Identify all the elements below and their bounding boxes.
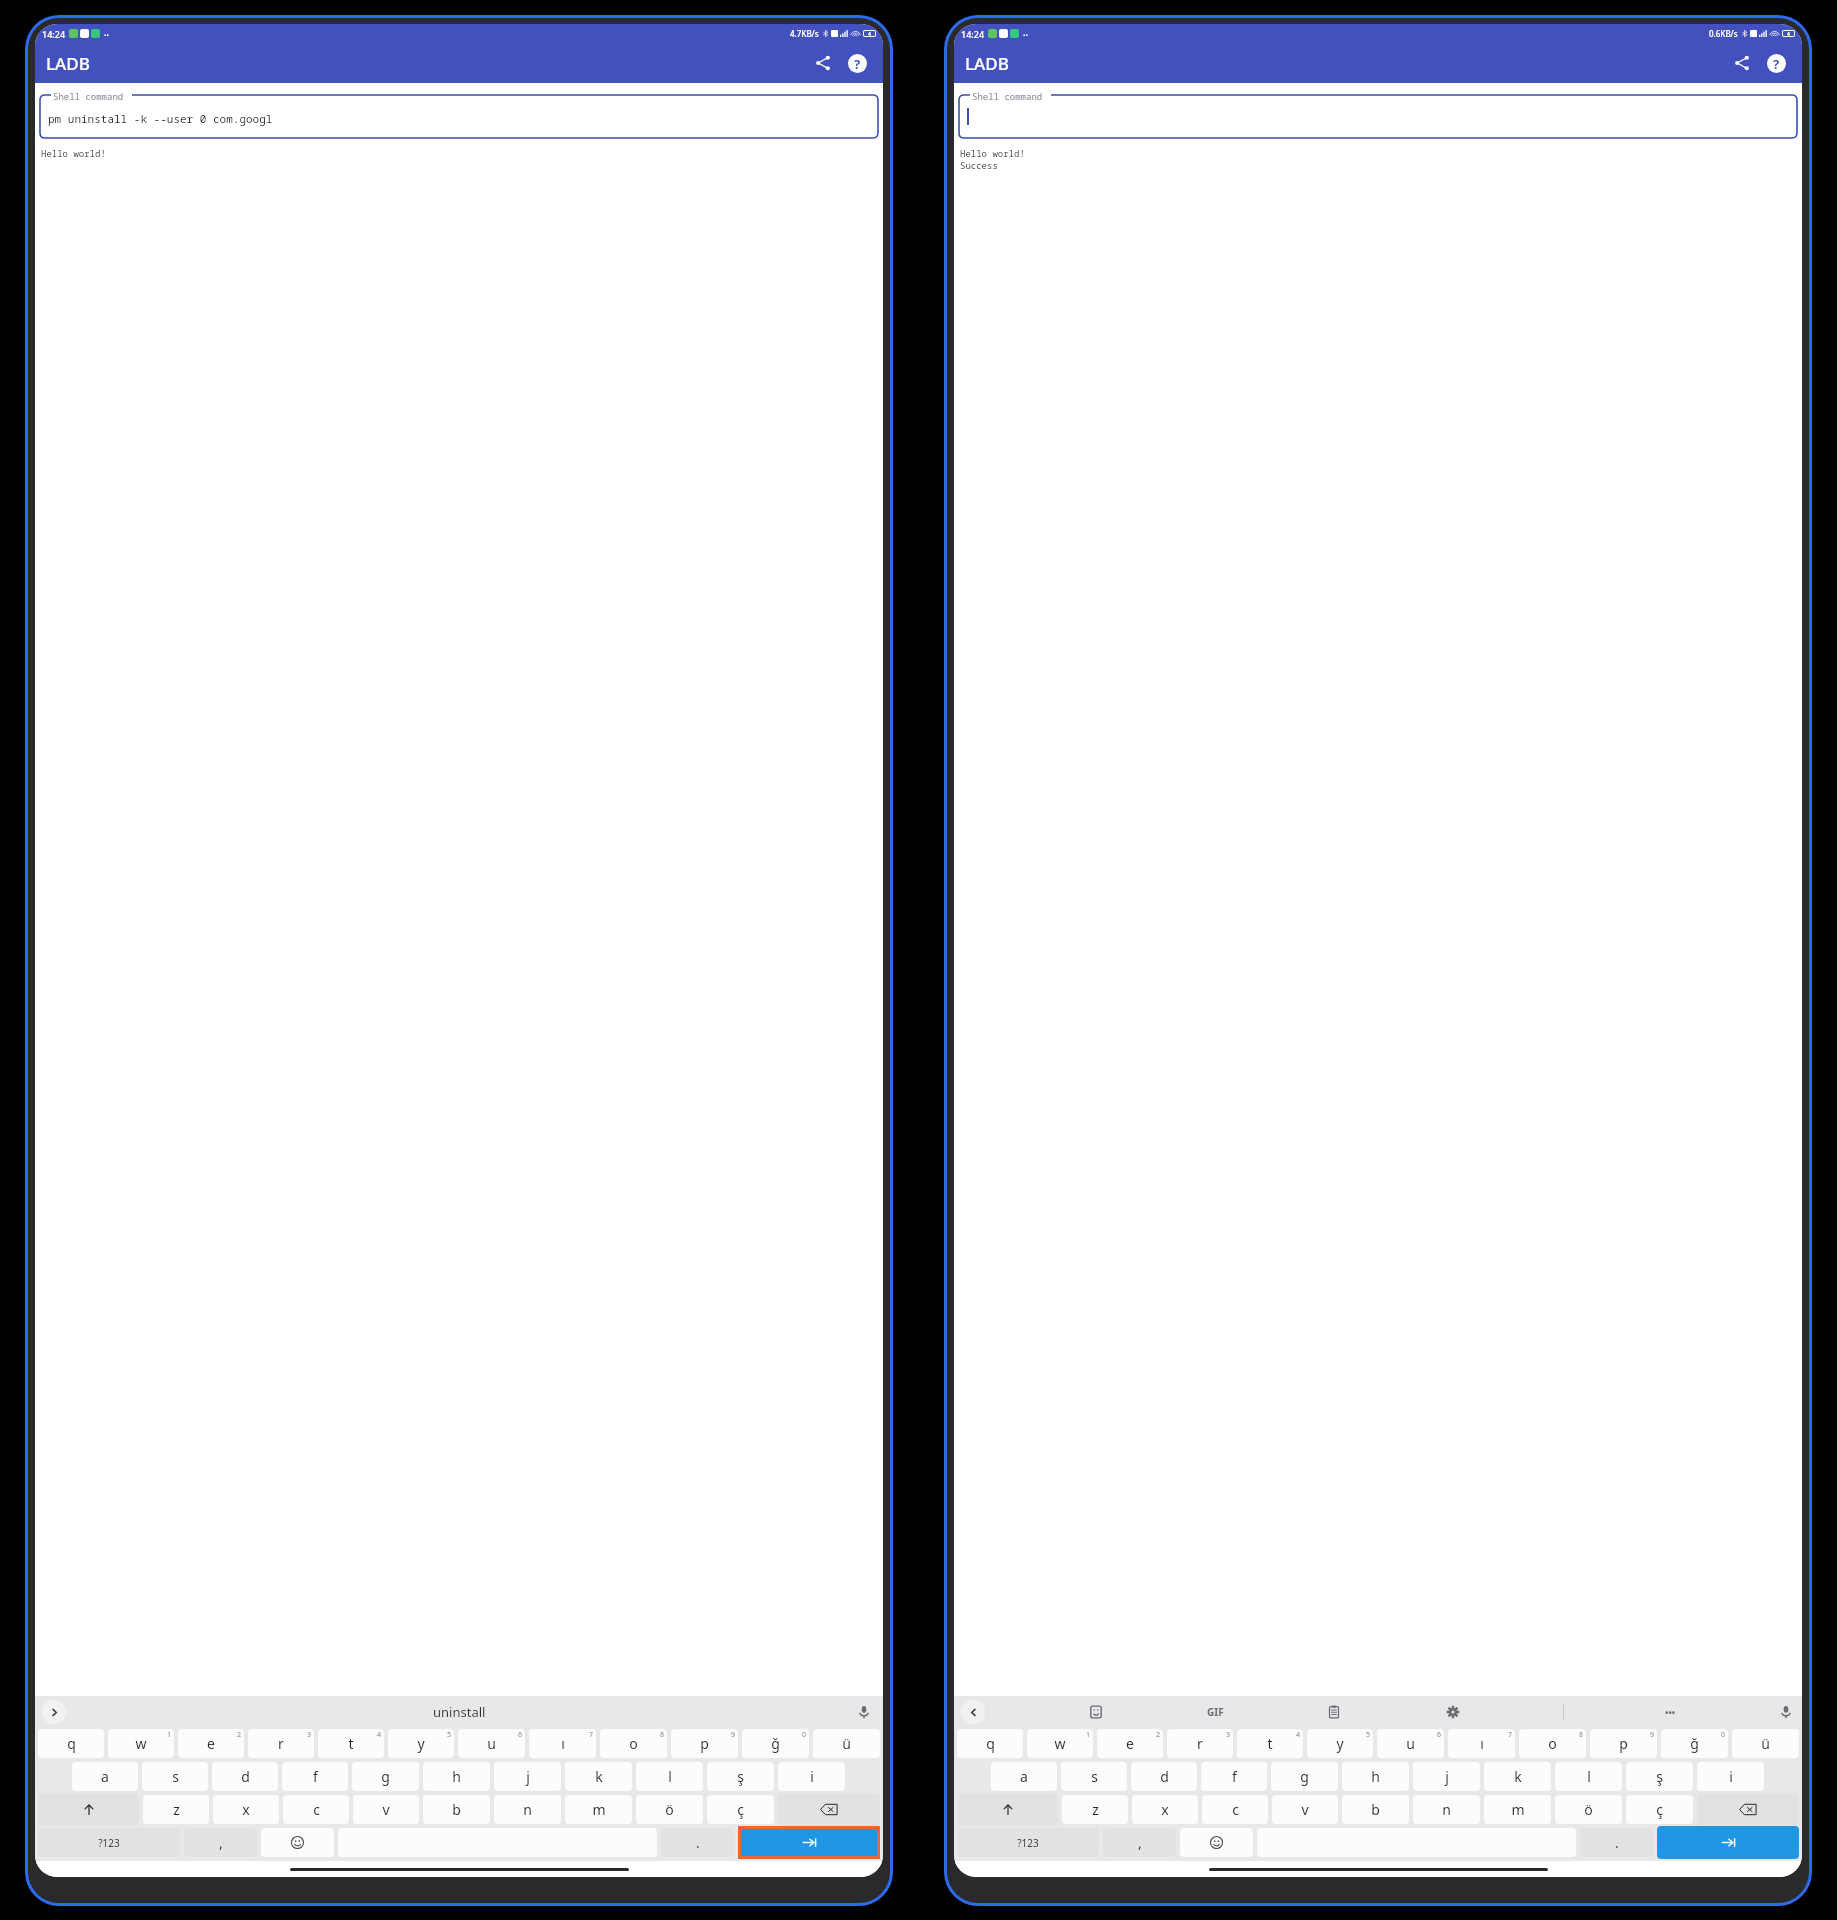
button[interactable] [261,1828,334,1857]
button[interactable]: s [142,1762,208,1791]
button[interactable]: u [1377,1729,1444,1758]
button[interactable]: Backspace [778,1793,880,1826]
button[interactable]: d [1131,1762,1197,1791]
staticText: 3 [1226,1730,1231,1740]
staticText: w [1054,1734,1066,1753]
button[interactable]: k [1484,1762,1551,1791]
button[interactable]: pm uninstall -k --user 0 com.googl [48,99,878,138]
button[interactable]: Share [1727,48,1757,78]
button[interactable]: ü [1732,1729,1799,1758]
button[interactable]: n [1413,1795,1480,1824]
button[interactable]: z [143,1795,209,1824]
button[interactable]: ı [529,1729,596,1758]
button[interactable]: uninstall [433,1703,486,1721]
button[interactable]: a [72,1762,138,1791]
button[interactable]: t [318,1729,384,1758]
button[interactable]: w [108,1729,174,1758]
button[interactable]: ö [636,1795,703,1824]
button[interactable]: e [1097,1729,1163,1758]
button[interactable]: Share [808,48,838,78]
button[interactable]: ç [1626,1795,1693,1824]
button[interactable]: Collapse toolbar [961,1700,985,1724]
button[interactable]: m [565,1795,632,1824]
button[interactable]: x [213,1795,279,1824]
button[interactable]: Enter [741,1829,877,1856]
button[interactable]: Settings [1444,1703,1462,1721]
button[interactable]: Shift [38,1793,139,1826]
button[interactable]: Clipboard [1325,1703,1343,1721]
button[interactable]: h [423,1762,490,1791]
button[interactable]: i [778,1762,845,1791]
button[interactable]: g [352,1762,419,1791]
button[interactable]: m [1484,1795,1551,1824]
button[interactable]: r [1167,1729,1233,1758]
button[interactable]: f [1201,1762,1267,1791]
button[interactable]: . [661,1828,734,1857]
button[interactable]: o [1519,1729,1586,1758]
button[interactable]: u [458,1729,525,1758]
button[interactable]: t [1237,1729,1303,1758]
button[interactable]: y [388,1729,454,1758]
button[interactable]: Enter [1657,1826,1799,1859]
button[interactable]: Voice input [854,1702,874,1722]
button[interactable]: j [1413,1762,1480,1791]
button[interactable]: e [178,1729,244,1758]
button[interactable]: p [1590,1729,1657,1758]
button[interactable]: , [1103,1828,1176,1857]
button[interactable]: c [1202,1795,1268,1824]
button[interactable]: ğ [742,1729,809,1758]
button[interactable]: ?123 [38,1828,180,1857]
button[interactable]: ç [707,1795,774,1824]
button[interactable]: x [1132,1795,1198,1824]
button[interactable]: Backspace [1697,1793,1799,1826]
button[interactable]: Help [842,48,872,78]
button[interactable]: ?123 [957,1828,1099,1857]
button[interactable]: f [282,1762,348,1791]
button[interactable]: More [1665,1706,1676,1718]
button[interactable]: l [1555,1762,1622,1791]
button[interactable]: , [184,1828,257,1857]
button[interactable]: y [1307,1729,1373,1758]
button[interactable]: ı [1448,1729,1515,1758]
staticText: ö [665,1800,674,1819]
button[interactable]: q [957,1729,1023,1758]
button[interactable]: . [1580,1828,1653,1857]
button[interactable]: b [423,1795,490,1824]
button[interactable]: GIF [1207,1705,1224,1719]
button[interactable]: i [1697,1762,1764,1791]
button[interactable]: Stickers [1087,1703,1105,1721]
button[interactable]: l [636,1762,703,1791]
button[interactable]: q [38,1729,104,1758]
button[interactable]: Shift [957,1793,1058,1826]
button[interactable]: b [1342,1795,1409,1824]
button[interactable]: n [494,1795,561,1824]
button[interactable]: j [494,1762,561,1791]
button[interactable] [1180,1828,1253,1857]
staticText: u [487,1734,496,1753]
button[interactable]: Voice input [1777,1703,1795,1721]
button[interactable]: Help [1761,48,1791,78]
button[interactable]: o [600,1729,667,1758]
button[interactable]: ğ [1661,1729,1728,1758]
button[interactable]: ş [1626,1762,1693,1791]
button[interactable]: p [671,1729,738,1758]
button[interactable]: z [1062,1795,1128,1824]
button[interactable]: s [1061,1762,1127,1791]
button[interactable]: v [1272,1795,1338,1824]
button[interactable]: w [1027,1729,1093,1758]
button[interactable] [967,99,1797,138]
button[interactable]: g [1271,1762,1338,1791]
button[interactable]: v [353,1795,419,1824]
button[interactable]: h [1342,1762,1409,1791]
button[interactable]: c [283,1795,349,1824]
button[interactable]: ö [1555,1795,1622,1824]
button[interactable]: k [565,1762,632,1791]
button[interactable]: d [212,1762,278,1791]
button[interactable]: ş [707,1762,774,1791]
button[interactable]: Expand toolbar [42,1700,66,1724]
button[interactable]: a [991,1762,1057,1791]
button[interactable]: ü [813,1729,880,1758]
button[interactable]: r [248,1729,314,1758]
